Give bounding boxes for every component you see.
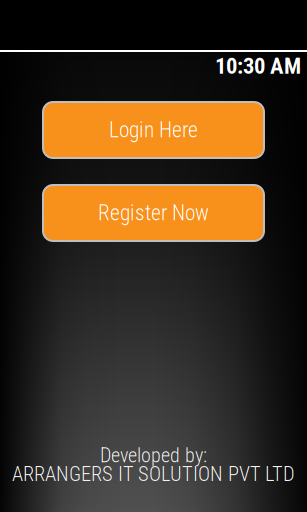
staticText: Developed by:	[100, 444, 207, 467]
staticText: 10:30 AM	[215, 53, 301, 79]
staticText: Login Here	[109, 117, 198, 142]
button[interactable]: Register Now	[42, 184, 265, 242]
staticText: ARRANGERS IT SOLUTION PVT LTD	[12, 462, 295, 486]
button[interactable]: Login Here	[42, 101, 265, 159]
staticText: Register Now	[98, 200, 209, 225]
